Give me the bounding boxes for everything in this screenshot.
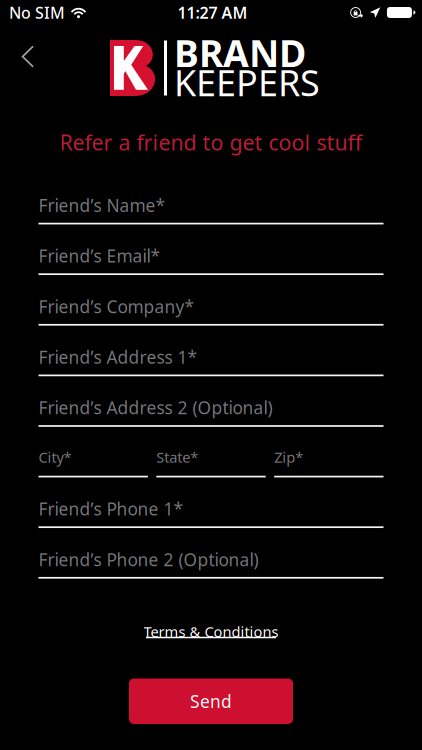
staticText: Friend’s Address 1* xyxy=(38,345,197,368)
staticText: Refer a friend to get cool stuff xyxy=(59,128,362,156)
staticText: Friend’s Name* xyxy=(38,194,165,217)
staticText: No SIM xyxy=(9,2,65,23)
button[interactable]: Terms & Conditions xyxy=(137,616,284,644)
staticText: Friend’s Phone 2 (Optional) xyxy=(38,548,258,571)
staticText: Friend’s Phone 1* xyxy=(38,497,183,520)
button[interactable]: Back xyxy=(0,32,52,104)
staticText: Zip* xyxy=(274,447,303,467)
staticText: State* xyxy=(156,447,198,467)
staticText: Friend’s Address 2 (Optional) xyxy=(38,396,272,419)
staticText: BRAND xyxy=(174,28,306,78)
staticText: City* xyxy=(38,447,71,467)
staticText: 11:27 AM xyxy=(177,2,247,23)
staticText: Friend’s Company* xyxy=(38,295,194,318)
staticText: Friend’s Email* xyxy=(38,244,160,267)
button[interactable]: Send xyxy=(129,678,293,724)
staticText: KEEPERS xyxy=(174,58,320,106)
staticText: Send xyxy=(190,690,232,713)
staticText: Terms & Conditions xyxy=(143,622,278,641)
